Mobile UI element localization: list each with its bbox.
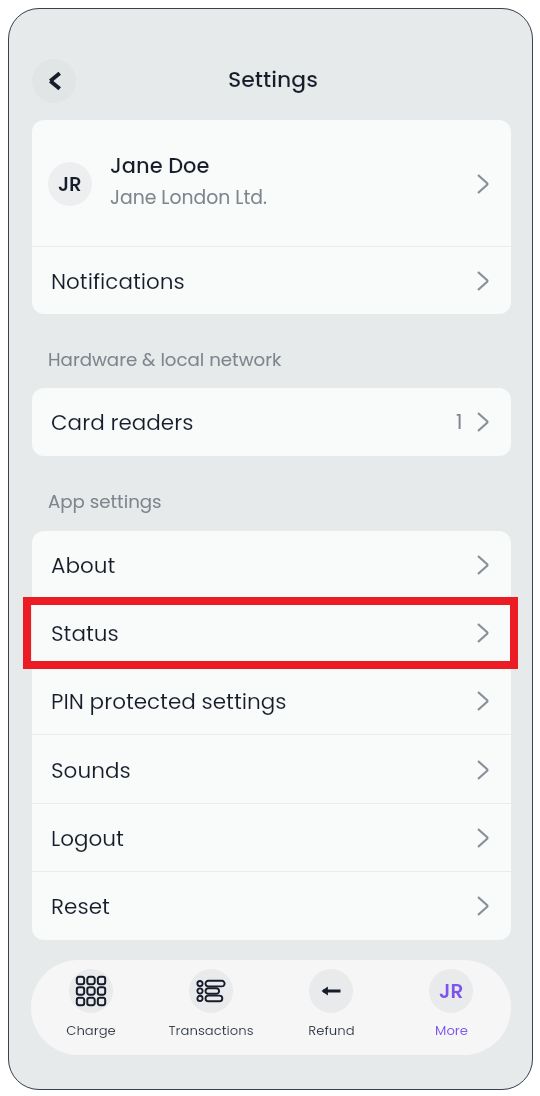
staticText: JR	[58, 171, 82, 198]
button[interactable]: About	[32, 531, 511, 599]
button[interactable]: Refund	[271, 960, 391, 1055]
button[interactable]: Card readers	[32, 388, 511, 456]
staticText: Charge	[66, 1021, 116, 1039]
staticText: Status	[51, 618, 119, 648]
staticText: Settings	[228, 64, 318, 95]
staticText: Jane London Ltd.	[110, 184, 267, 210]
button[interactable]: Logout	[32, 804, 511, 872]
button[interactable]: Back	[32, 59, 76, 103]
button[interactable]: Transactions	[151, 960, 271, 1055]
staticText: Logout	[51, 823, 124, 853]
staticText: App settings	[48, 489, 162, 514]
staticText: Card readers	[51, 407, 194, 437]
staticText: About	[51, 550, 116, 580]
button[interactable]: Notifications	[32, 247, 511, 314]
staticText: Hardware & local network	[48, 347, 282, 372]
staticText: Transactions	[168, 1021, 254, 1039]
staticText: Sounds	[51, 755, 131, 785]
button[interactable]: JR	[391, 960, 511, 1055]
staticText: Notifications	[51, 266, 185, 296]
staticText: PIN protected settings	[51, 686, 287, 716]
staticText: 1	[456, 408, 463, 436]
button[interactable]: Status	[32, 599, 511, 667]
button[interactable]: Sounds	[32, 735, 511, 804]
button[interactable]: PIN protected settings	[32, 667, 511, 735]
button[interactable]: Reset	[32, 872, 511, 940]
button[interactable]: Charge	[31, 960, 151, 1055]
staticText: Jane Doe	[110, 151, 210, 180]
staticText: JR	[439, 977, 464, 1005]
button[interactable]: JR	[32, 120, 511, 247]
staticText: Reset	[51, 891, 110, 921]
staticText: More	[435, 1021, 468, 1039]
staticText: Refund	[308, 1021, 355, 1039]
